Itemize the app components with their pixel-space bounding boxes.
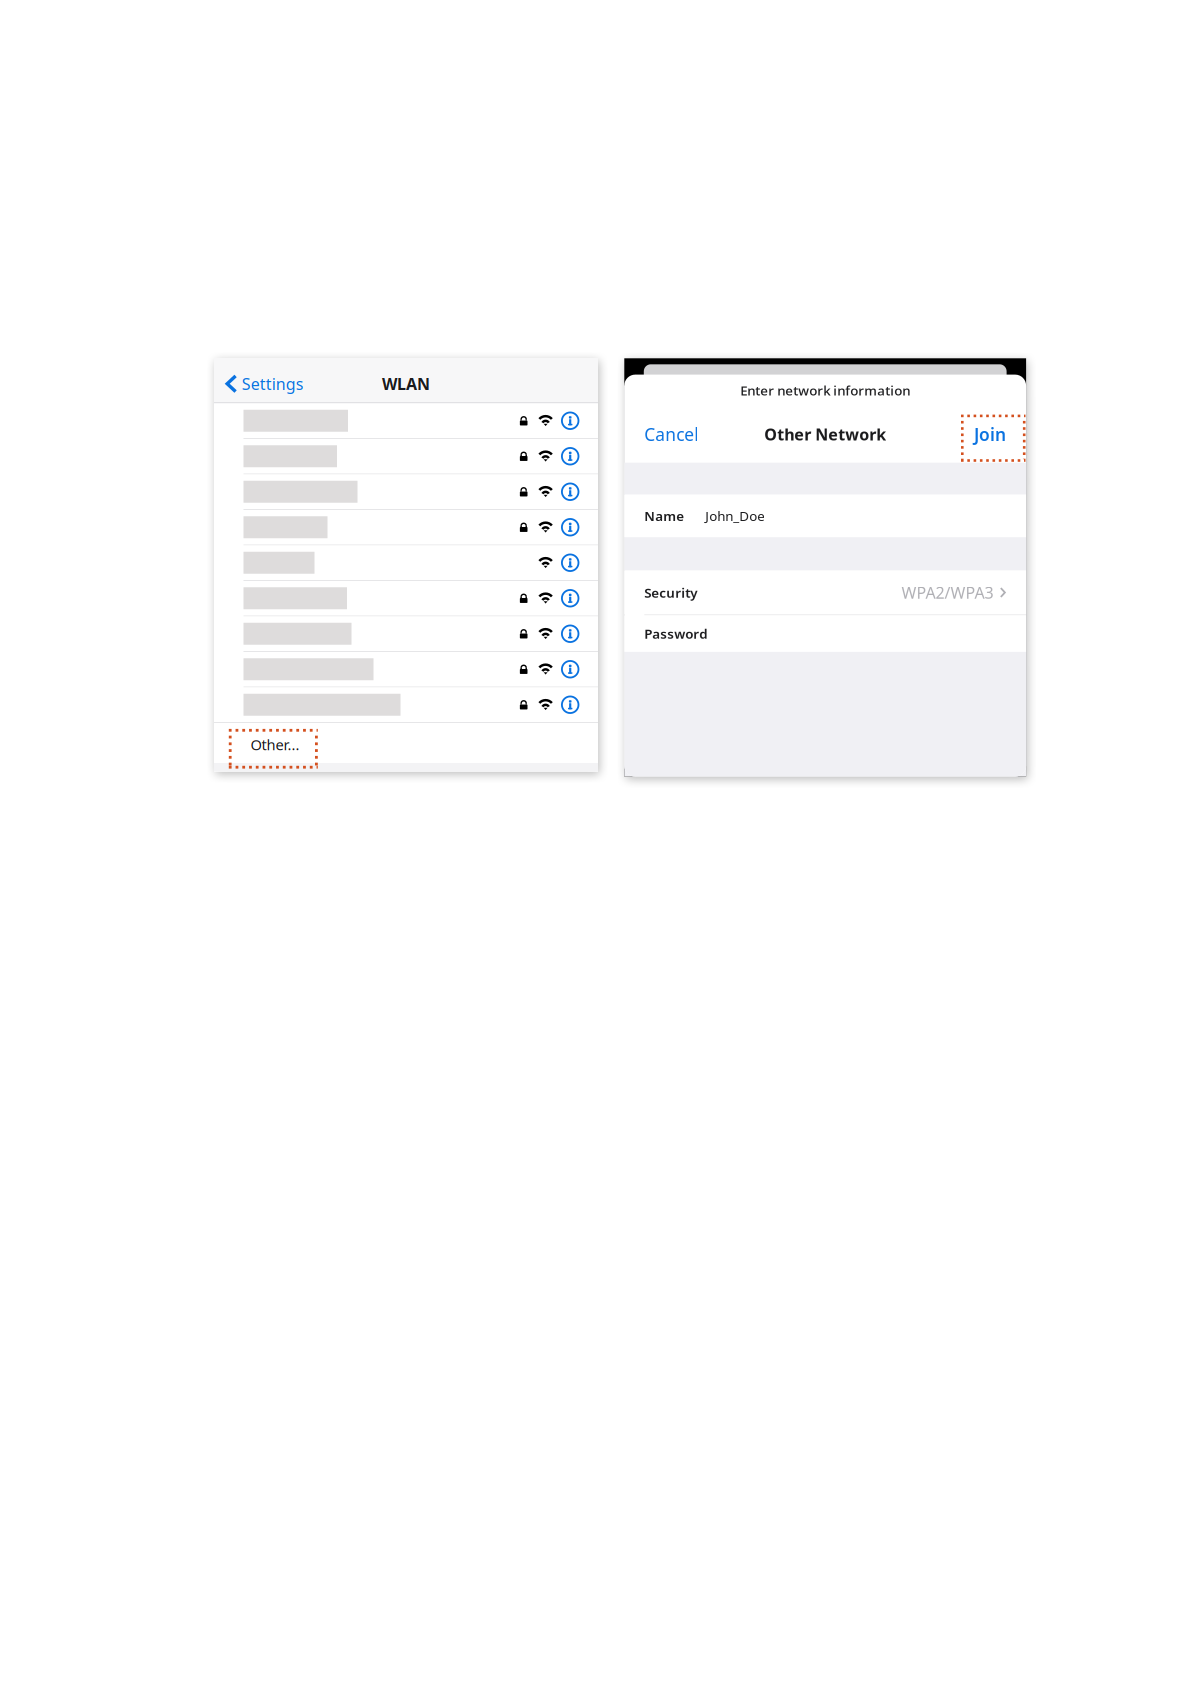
- button[interactable]: Network details: [562, 439, 598, 473]
- button[interactable]: Settings: [214, 366, 304, 395]
- button[interactable]: Network details: [562, 510, 598, 544]
- staticText: WLAN: [382, 373, 430, 394]
- button[interactable]: Join Wi-Fi network: [214, 545, 598, 580]
- staticText: Cancel: [644, 423, 698, 446]
- staticText: Enter network information: [740, 381, 910, 399]
- button[interactable]: Security: [624, 571, 1026, 614]
- staticText: Password: [644, 625, 707, 642]
- button[interactable]: Join Wi-Fi network: [214, 652, 598, 686]
- button[interactable]: Join Wi-Fi network: [214, 403, 598, 438]
- button[interactable]: Join Wi-Fi network: [214, 581, 598, 615]
- button[interactable]: Join Wi-Fi network: [214, 687, 598, 722]
- staticText: Name: [644, 507, 684, 525]
- staticText: WPA2/WPA3: [901, 582, 993, 603]
- button[interactable]: Network details: [562, 652, 598, 686]
- button[interactable]: Join Wi-Fi network: [214, 616, 598, 651]
- button[interactable]: Network details: [562, 581, 598, 615]
- button[interactable]: Network details: [562, 403, 598, 438]
- button[interactable]: Other...: [214, 723, 598, 763]
- staticText: John_Doe: [705, 507, 765, 525]
- button[interactable]: Password: [624, 615, 1026, 652]
- button[interactable]: Join Wi-Fi network: [214, 439, 598, 473]
- button[interactable]: Join: [960, 413, 1026, 456]
- staticText: Join: [974, 423, 1006, 446]
- button[interactable]: Network details: [562, 545, 598, 580]
- button[interactable]: Join Wi-Fi network: [214, 474, 598, 509]
- staticText: Settings: [242, 373, 304, 394]
- button[interactable]: Network details: [562, 474, 598, 509]
- button[interactable]: Network details: [562, 616, 598, 651]
- button[interactable]: Join Wi-Fi network: [214, 510, 598, 544]
- staticText: Other...: [250, 735, 299, 754]
- staticText: Security: [644, 584, 697, 601]
- staticText: Other Network: [764, 424, 886, 445]
- button[interactable]: Network details: [562, 687, 598, 722]
- button[interactable]: Cancel: [624, 413, 712, 456]
